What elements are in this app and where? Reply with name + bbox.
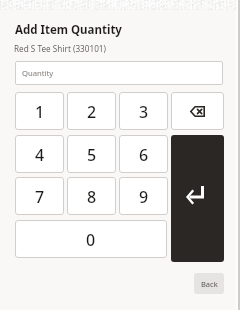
staticText: 2 [87,101,97,123]
button[interactable]: 4 [15,135,64,173]
button[interactable]: 7 [15,177,64,215]
button[interactable]: 1 [15,92,64,130]
button[interactable]: Back [194,273,224,294]
staticText: 5 [87,144,97,166]
button[interactable]: 0 [15,220,167,258]
staticText: 3 [139,101,149,123]
button[interactable]: 6 [119,135,168,173]
staticText: 4 [35,144,45,166]
staticText: Quantity [22,68,54,78]
staticText: 0 [86,229,96,251]
staticText: 7 [35,186,45,208]
staticText: Back [201,279,218,289]
button[interactable]: Enter [171,135,224,262]
staticText: Red S Tee Shirt (330101) [14,43,106,54]
button[interactable]: Quantity [15,61,223,85]
button[interactable]: 2 [67,92,116,130]
button[interactable]: 9 [119,177,168,215]
button[interactable]: Backspace [171,92,224,130]
staticText: 9 [139,186,149,208]
staticText: 8 [87,186,97,208]
staticText: 6 [139,144,149,166]
staticText: Add Item Quantity [15,22,122,38]
button[interactable]: 3 [119,92,168,130]
staticText: 1 [35,101,45,123]
button[interactable]: 5 [67,135,116,173]
button[interactable]: 8 [67,177,116,215]
